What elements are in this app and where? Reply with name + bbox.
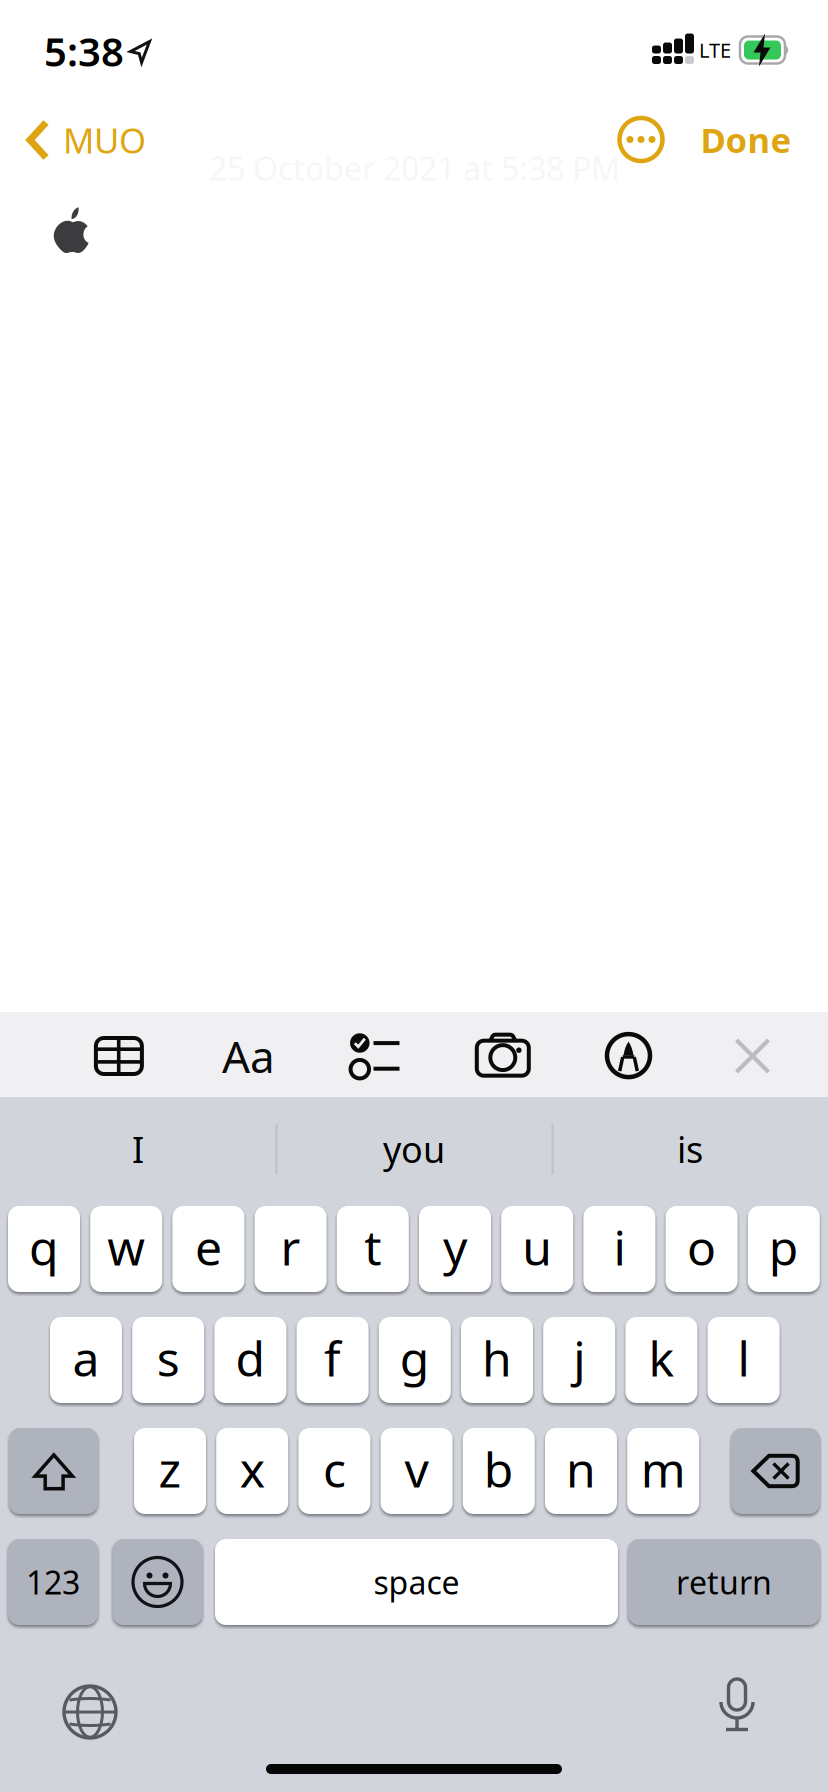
button[interactable]: b: [463, 1428, 535, 1514]
button[interactable]: p: [748, 1206, 820, 1292]
staticText: I: [132, 1125, 144, 1173]
staticText: you: [383, 1125, 445, 1173]
button[interactable]: q: [8, 1206, 80, 1292]
staticText: Done: [700, 116, 791, 162]
button[interactable]: z: [134, 1428, 206, 1514]
staticText: o: [687, 1215, 716, 1279]
staticText: y: [443, 1215, 467, 1279]
button[interactable]: a: [50, 1317, 122, 1403]
button[interactable]: x: [216, 1428, 288, 1514]
staticText: h: [482, 1326, 512, 1390]
staticText: MUO: [63, 117, 146, 163]
button[interactable]: j: [543, 1317, 615, 1403]
staticText: s: [157, 1326, 180, 1390]
button[interactable]: g: [379, 1317, 451, 1403]
button[interactable]: n: [545, 1428, 617, 1514]
staticText: e: [195, 1215, 222, 1279]
staticText: w: [107, 1215, 145, 1279]
button[interactable]: r: [255, 1206, 327, 1292]
button[interactable]: Dictate: [713, 1677, 761, 1739]
button[interactable]: u: [501, 1206, 573, 1292]
button[interactable]: Shift: [9, 1428, 98, 1514]
button[interactable]: Done: [700, 116, 791, 162]
staticText: v: [405, 1437, 429, 1501]
staticText: 5:38: [44, 24, 124, 77]
button[interactable]: I: [3, 1106, 273, 1192]
staticText: p: [769, 1215, 799, 1279]
staticText: 123: [26, 1561, 80, 1603]
button[interactable]: d: [214, 1317, 286, 1403]
button[interactable]: More: [618, 116, 664, 162]
staticText: return: [676, 1561, 772, 1603]
staticText: a: [72, 1326, 99, 1390]
button[interactable]: o: [666, 1206, 738, 1292]
button[interactable]: Delete: [731, 1428, 820, 1514]
staticText: n: [566, 1437, 596, 1501]
button[interactable]: i: [583, 1206, 655, 1292]
staticText: b: [484, 1437, 514, 1501]
button[interactable]: Dismiss: [734, 1038, 770, 1074]
button[interactable]: m: [627, 1428, 699, 1514]
button[interactable]: l: [708, 1317, 780, 1403]
button[interactable]: MUO: [26, 114, 206, 166]
button[interactable]: f: [297, 1317, 369, 1403]
staticText: Aa: [222, 1027, 275, 1085]
button[interactable]: Format: [222, 1027, 275, 1085]
button[interactable]: v: [381, 1428, 453, 1514]
staticText: l: [738, 1326, 750, 1390]
staticText: r: [281, 1215, 301, 1279]
button[interactable]: return: [628, 1539, 820, 1625]
staticText: space: [373, 1561, 459, 1603]
staticText: k: [648, 1326, 674, 1390]
button[interactable]: Camera: [476, 1033, 530, 1077]
button[interactable]: Markup: [605, 1033, 651, 1079]
staticText: 25 October 2021 at 5:38 PM: [209, 147, 620, 189]
staticText: t: [364, 1215, 381, 1279]
button[interactable]: e: [172, 1206, 244, 1292]
staticText: u: [522, 1215, 552, 1279]
staticText: z: [158, 1437, 181, 1501]
button[interactable]: w: [90, 1206, 162, 1292]
staticText: q: [29, 1215, 59, 1279]
staticText: d: [235, 1326, 265, 1390]
button[interactable]: Next keyboard: [62, 1684, 118, 1740]
staticText: m: [641, 1437, 686, 1501]
button[interactable]: k: [625, 1317, 697, 1403]
staticText: g: [400, 1326, 430, 1390]
staticText: i: [613, 1215, 625, 1279]
button[interactable]: you: [279, 1106, 549, 1192]
staticText: is: [677, 1125, 703, 1173]
button[interactable]: s: [132, 1317, 204, 1403]
button[interactable]: is: [555, 1106, 825, 1192]
staticText: x: [240, 1437, 265, 1501]
button[interactable]: h: [461, 1317, 533, 1403]
staticText: f: [324, 1326, 341, 1390]
button[interactable]: y: [419, 1206, 491, 1292]
button[interactable]: t: [337, 1206, 409, 1292]
button[interactable]: space: [215, 1539, 618, 1625]
staticText: j: [573, 1326, 585, 1390]
button[interactable]: Emoji: [112, 1539, 202, 1625]
button[interactable]: Checklist: [349, 1033, 399, 1079]
button[interactable]: c: [298, 1428, 370, 1514]
staticText: c: [323, 1437, 346, 1501]
button[interactable]: Insert table: [94, 1036, 144, 1076]
button[interactable]: 123: [8, 1539, 98, 1625]
staticText: LTE: [699, 37, 731, 63]
